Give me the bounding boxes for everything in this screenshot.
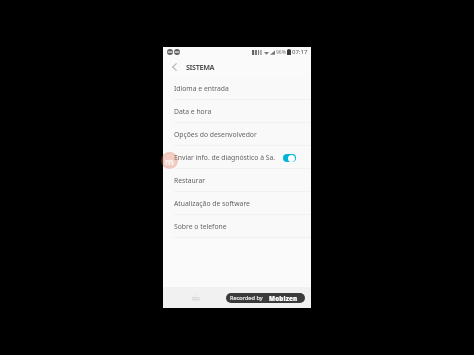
button[interactable]: Idioma e entrada <box>163 77 311 100</box>
button[interactable]: Back <box>168 61 180 73</box>
staticText: Enviar info. de diagnóstico à Sa. <box>174 153 283 162</box>
staticText: SISTEMA <box>186 62 215 72</box>
button[interactable]: Enviar info. de diagnóstico à Sa. <box>163 146 311 169</box>
button[interactable]: Back <box>274 291 288 305</box>
button[interactable]: Restaurar <box>163 169 311 192</box>
button[interactable]: Toggle diagnostics <box>283 154 296 162</box>
staticText: Recorded by <box>230 294 263 302</box>
button[interactable]: Sobre o telefone <box>163 215 311 238</box>
button[interactable]: Atualização de software <box>163 192 311 215</box>
staticText: m <box>165 155 174 167</box>
staticText: Mobizen <box>269 294 298 302</box>
staticText: 96% <box>276 49 286 56</box>
staticText: 07:17 <box>292 48 308 56</box>
staticText: Data e hora <box>174 107 296 116</box>
button[interactable]: Recent apps <box>189 291 203 305</box>
button[interactable]: Opções do desenvolvedor <box>163 123 311 146</box>
staticText: Restaurar <box>174 176 296 185</box>
staticText: Opções do desenvolvedor <box>174 130 296 139</box>
staticText: Sobre o telefone <box>174 222 296 231</box>
button[interactable]: Data e hora <box>163 100 311 123</box>
staticText: Idioma e entrada <box>174 84 296 93</box>
staticText: Atualização de software <box>174 199 296 208</box>
button[interactable]: Home <box>228 289 246 307</box>
